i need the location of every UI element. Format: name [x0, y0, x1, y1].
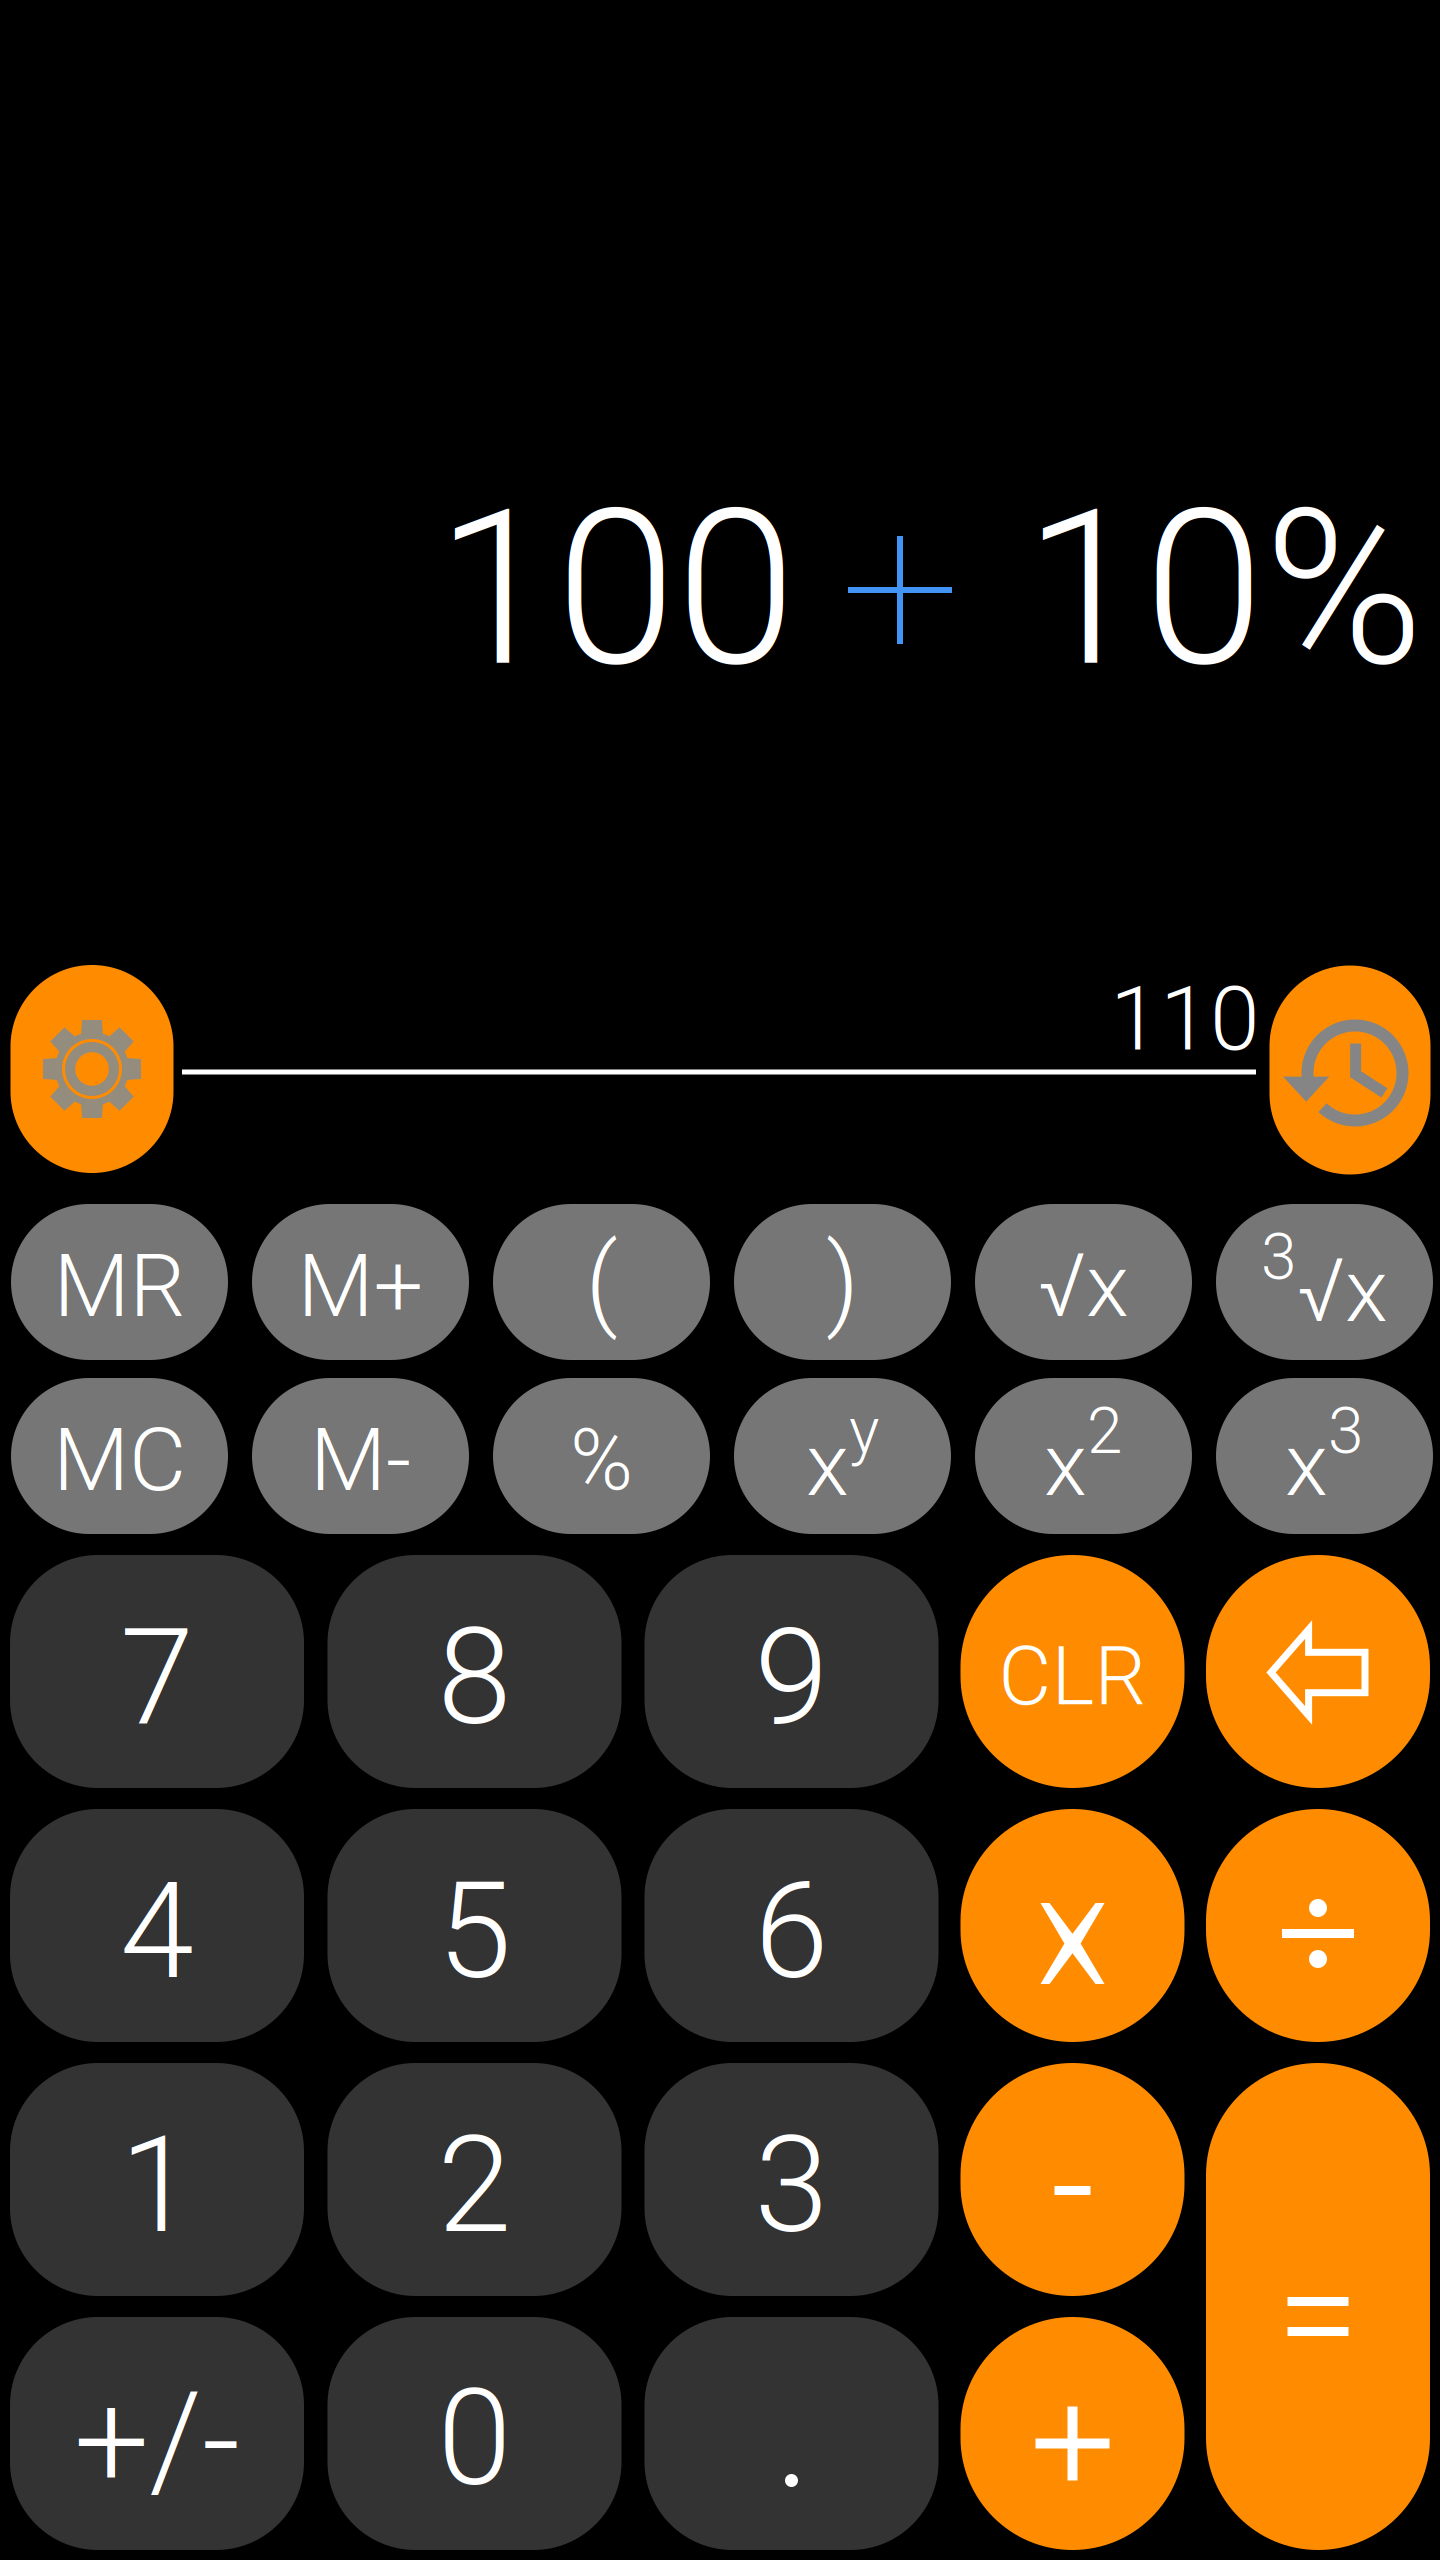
staticText: √x: [1038, 1234, 1129, 1337]
staticText: 2: [1087, 1393, 1123, 1468]
button[interactable]: (: [493, 1204, 710, 1360]
staticText: 5: [437, 1853, 511, 2010]
staticText: 8: [437, 1599, 511, 1756]
button[interactable]: 1: [10, 2063, 304, 2296]
staticText: M+: [297, 1234, 423, 1337]
staticText: (: [585, 1223, 617, 1341]
staticText: 2: [437, 2107, 511, 2264]
button[interactable]: 3: [1216, 1204, 1433, 1360]
button[interactable]: ): [734, 1204, 951, 1360]
button[interactable]: x: [975, 1378, 1192, 1534]
staticText: 100: [436, 462, 849, 715]
staticText: √x: [1297, 1239, 1388, 1342]
button[interactable]: 0: [327, 2317, 621, 2550]
button[interactable]: x: [1216, 1378, 1433, 1534]
button[interactable]: Add: [960, 2317, 1184, 2550]
staticText: %: [570, 1410, 633, 1510]
staticText: M-: [310, 1408, 411, 1511]
button[interactable]: Equals: [1206, 2063, 1430, 2550]
staticText: 3: [1328, 1393, 1364, 1468]
staticText: x: [806, 1413, 849, 1516]
button[interactable]: CLR: [960, 1555, 1184, 1788]
staticText: 6: [754, 1853, 828, 2010]
staticText: x: [1285, 1413, 1328, 1516]
button[interactable]: History: [1269, 965, 1430, 1174]
staticText: 9: [754, 1599, 828, 1756]
staticText: CLR: [998, 1629, 1146, 1724]
button[interactable]: Backspace: [1206, 1555, 1430, 1788]
staticText: MR: [53, 1234, 185, 1337]
staticText: 4: [120, 1853, 194, 2010]
staticText: 1: [120, 2107, 194, 2264]
staticText: MC: [53, 1408, 186, 1511]
button[interactable]: Subtract: [960, 2063, 1184, 2296]
button[interactable]: Multiply: [960, 1809, 1184, 2042]
staticText: 10%: [971, 462, 1424, 715]
staticText: 3: [754, 2107, 828, 2264]
button[interactable]: %: [493, 1378, 710, 1534]
staticText: 7: [120, 1599, 194, 1756]
button[interactable]: M-: [252, 1378, 469, 1534]
button[interactable]: 9: [644, 1555, 938, 1788]
staticText: +/-: [74, 2363, 240, 2520]
button[interactable]: 4: [10, 1809, 304, 2042]
staticText: 0: [437, 2360, 511, 2517]
button[interactable]: 5: [327, 1809, 621, 2042]
staticText: y: [849, 1393, 879, 1468]
button[interactable]: Divide: [1206, 1809, 1430, 2042]
button[interactable]: M+: [252, 1204, 469, 1360]
button[interactable]: Decimal point: [644, 2317, 938, 2550]
button[interactable]: 7: [10, 1555, 304, 1788]
button[interactable]: MR: [11, 1204, 228, 1360]
button[interactable]: √x: [975, 1204, 1192, 1360]
staticText: 3: [1261, 1219, 1297, 1294]
staticText: ): [826, 1223, 859, 1341]
button[interactable]: Settings: [10, 965, 173, 1173]
button[interactable]: 6: [644, 1809, 938, 2042]
staticText: x: [1044, 1413, 1087, 1516]
staticText: +: [849, 462, 971, 715]
button[interactable]: 2: [327, 2063, 621, 2296]
button[interactable]: 8: [327, 1555, 621, 1788]
staticText: 110: [1110, 967, 1260, 1071]
button[interactable]: x: [734, 1378, 951, 1534]
button[interactable]: +/-: [10, 2317, 304, 2550]
button[interactable]: MC: [11, 1378, 228, 1534]
button[interactable]: 3: [644, 2063, 938, 2296]
